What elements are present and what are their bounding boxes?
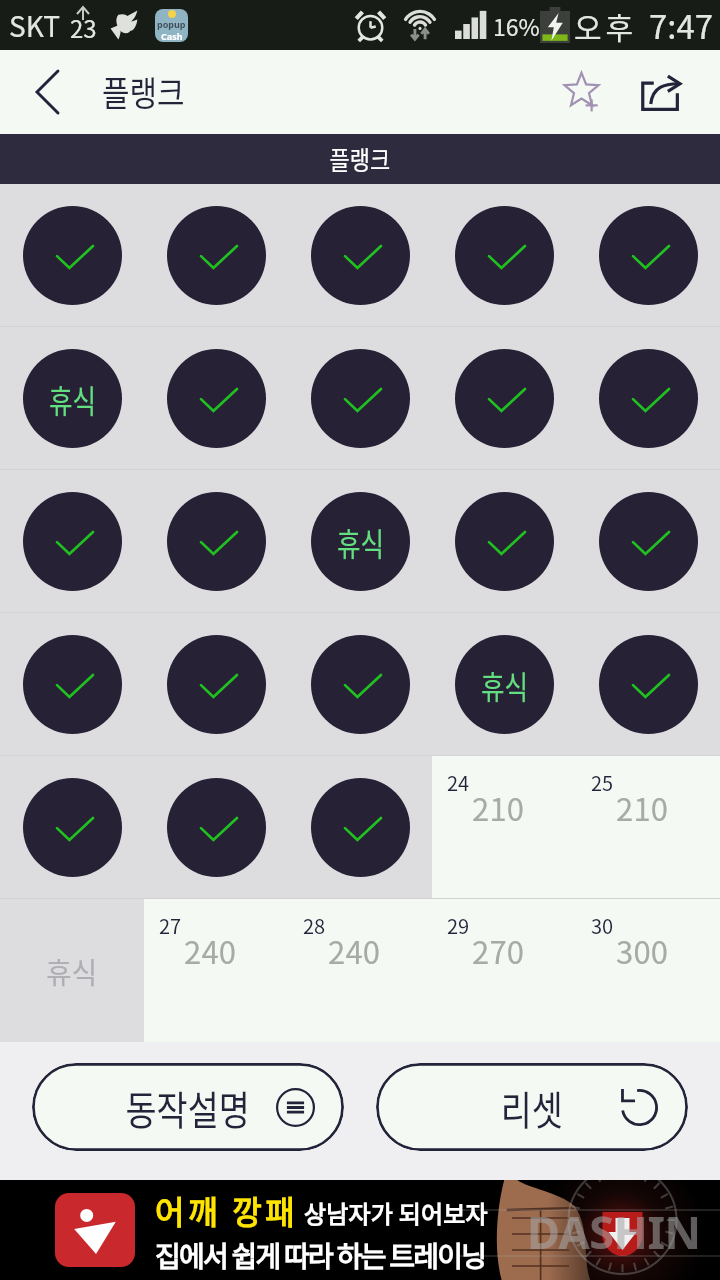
button[interactable]: 27 xyxy=(144,899,288,1042)
staticText: 240 xyxy=(184,928,237,973)
button[interactable]: 동작설명 xyxy=(32,1063,344,1151)
button[interactable]: 휴식 xyxy=(0,899,144,1042)
staticText: 플랭크 xyxy=(330,140,390,178)
staticText: 300 xyxy=(616,928,669,973)
staticText: 휴식 xyxy=(337,519,384,565)
staticText: popup xyxy=(157,18,186,30)
button[interactable] xyxy=(144,184,288,327)
staticText: 210 xyxy=(472,785,525,830)
button[interactable] xyxy=(576,327,720,470)
button[interactable]: 29 xyxy=(432,899,576,1042)
staticText: 29 xyxy=(447,911,470,940)
button[interactable] xyxy=(288,756,432,899)
button[interactable] xyxy=(0,613,144,756)
staticText: 어깨 깡패 xyxy=(155,1187,299,1233)
button[interactable]: 휴식 xyxy=(288,470,432,613)
staticText: 집에서 쉽게 따라 하는 트레이닝 xyxy=(155,1235,486,1276)
staticText: 16% xyxy=(493,9,540,42)
button[interactable] xyxy=(432,470,576,613)
button[interactable]: Add to favorites xyxy=(541,50,621,134)
staticText: 7:47 xyxy=(649,1,714,49)
staticText: 27 xyxy=(159,911,182,940)
button[interactable] xyxy=(288,327,432,470)
button[interactable] xyxy=(144,613,288,756)
button[interactable] xyxy=(0,184,144,327)
button[interactable]: 휴식 xyxy=(0,327,144,470)
staticText: 휴식 xyxy=(481,662,528,708)
button[interactable]: Share xyxy=(621,50,701,134)
button[interactable] xyxy=(432,327,576,470)
button[interactable]: Back xyxy=(0,50,94,134)
button[interactable] xyxy=(144,470,288,613)
staticText: Cash xyxy=(161,30,183,42)
staticText: 플랭크 xyxy=(102,67,185,116)
staticText: 25 xyxy=(591,768,614,797)
button[interactable] xyxy=(0,756,144,899)
staticText: 30 xyxy=(591,911,614,940)
button[interactable]: 24 xyxy=(432,756,576,899)
staticText: 리셋 xyxy=(501,1079,563,1137)
staticText: 240 xyxy=(328,928,381,973)
button[interactable] xyxy=(576,184,720,327)
staticText: 휴식 xyxy=(46,950,98,992)
staticText: 휴식 xyxy=(49,376,96,422)
staticText: 24 xyxy=(447,768,470,797)
button[interactable]: Advertisement xyxy=(0,1180,720,1280)
button[interactable] xyxy=(576,470,720,613)
button[interactable] xyxy=(288,184,432,327)
button[interactable]: 리셋 xyxy=(376,1063,688,1151)
staticText: 동작설명 xyxy=(125,1079,251,1137)
staticText: 오후 xyxy=(574,4,638,47)
staticText: 23 xyxy=(70,10,97,45)
button[interactable]: 28 xyxy=(288,899,432,1042)
staticText: 210 xyxy=(616,785,669,830)
staticText: 상남자가 되어보자 xyxy=(304,1195,488,1230)
button[interactable] xyxy=(432,184,576,327)
staticText: DASHIN xyxy=(527,1201,701,1262)
button[interactable]: 25 xyxy=(576,756,720,899)
button[interactable] xyxy=(144,327,288,470)
staticText: 28 xyxy=(303,911,326,940)
button[interactable]: 30 xyxy=(576,899,720,1042)
staticText: 270 xyxy=(472,928,525,973)
button[interactable] xyxy=(576,613,720,756)
button[interactable] xyxy=(288,613,432,756)
staticText: SKT xyxy=(9,5,61,46)
button[interactable]: 휴식 xyxy=(432,613,576,756)
button[interactable] xyxy=(0,470,144,613)
button[interactable] xyxy=(144,756,288,899)
